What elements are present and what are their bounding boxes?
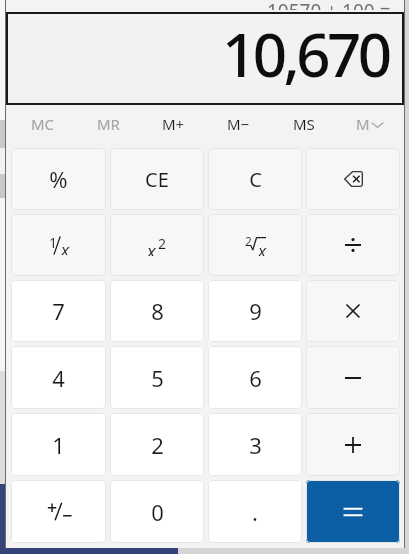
- staticText: %: [49, 164, 68, 194]
- staticText: 5: [151, 363, 164, 393]
- button[interactable]: Seven: [11, 280, 106, 342]
- other: Plus: [343, 435, 363, 455]
- button[interactable]: M+: [141, 104, 206, 144]
- button[interactable]: Positive negative: [11, 480, 106, 543]
- button[interactable]: Multiply: [306, 280, 400, 342]
- staticText: .: [252, 497, 258, 527]
- button[interactable]: Square: [110, 214, 204, 276]
- button[interactable]: Plus: [306, 413, 400, 476]
- button[interactable]: Equals: [306, 480, 400, 543]
- button[interactable]: Six: [208, 346, 302, 409]
- staticText: 7: [52, 296, 65, 326]
- button[interactable]: Backspace: [306, 148, 400, 210]
- staticText: x: [258, 239, 267, 256]
- staticText: 4: [52, 363, 65, 393]
- staticText: 9: [249, 296, 262, 326]
- button[interactable]: Decimal point: [208, 480, 302, 543]
- other: Divide: [343, 235, 363, 255]
- button[interactable]: Four: [11, 346, 106, 409]
- button[interactable]: M: [336, 104, 401, 144]
- button[interactable]: Two: [110, 413, 204, 476]
- button[interactable]: Nine: [208, 280, 302, 342]
- staticText: MC: [31, 114, 55, 134]
- staticText: M+: [162, 114, 185, 134]
- staticText: 10570 + 100 =: [267, 0, 391, 10]
- button[interactable]: Five: [110, 346, 204, 409]
- button[interactable]: Zero: [110, 480, 204, 543]
- other: Equals: [343, 502, 363, 522]
- staticText: 0: [151, 497, 164, 527]
- staticText: MS: [293, 114, 315, 134]
- button[interactable]: M−: [206, 104, 271, 144]
- staticText: 1: [49, 233, 58, 250]
- staticText: M: [356, 114, 370, 134]
- button[interactable]: Clear: [208, 148, 302, 210]
- button[interactable]: Eight: [110, 280, 204, 342]
- staticText: CE: [145, 166, 169, 193]
- staticText: M−: [227, 114, 250, 134]
- staticText: C: [249, 166, 262, 193]
- button[interactable]: Reciprocal: [11, 214, 106, 276]
- button[interactable]: MC: [10, 104, 76, 144]
- staticText: 6: [249, 363, 262, 393]
- other: Minus: [343, 368, 363, 388]
- button[interactable]: One: [11, 413, 106, 476]
- button[interactable]: Percent: [11, 148, 106, 210]
- staticText: 8: [151, 296, 164, 326]
- other: Positive negative: [47, 502, 70, 521]
- staticText: x: [147, 239, 156, 256]
- staticText: 1: [52, 430, 65, 460]
- staticText: 3: [249, 430, 262, 460]
- button[interactable]: Square root: [208, 214, 302, 276]
- button[interactable]: MS: [271, 104, 336, 144]
- staticText: 10,670: [222, 13, 389, 95]
- staticText: 2: [151, 430, 164, 460]
- staticText: 2: [158, 234, 167, 251]
- button[interactable]: Clear entry: [110, 148, 204, 210]
- button[interactable]: MR: [76, 104, 141, 144]
- staticText: x: [61, 238, 70, 255]
- other: Backspace: [344, 171, 363, 187]
- staticText: 2: [245, 233, 252, 249]
- button[interactable]: Three: [208, 413, 302, 476]
- button[interactable]: Divide: [306, 214, 400, 276]
- button[interactable]: Minus: [306, 346, 400, 409]
- staticText: MR: [97, 114, 120, 134]
- other: Multiply: [343, 301, 363, 321]
